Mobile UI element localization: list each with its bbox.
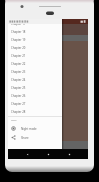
staticText: Share	[21, 136, 29, 140]
button[interactable]: Chapter 23	[8, 68, 62, 76]
button[interactable]: Chapter 21	[8, 52, 62, 60]
button[interactable]: Chapter 20	[8, 44, 62, 52]
button[interactable]: Recent apps	[64, 149, 75, 159]
staticText: Chapter 17	[11, 22, 26, 26]
staticText: Chapter 26	[11, 94, 26, 98]
staticText: Chapter 21	[11, 54, 26, 58]
staticText: Chapter 27	[11, 102, 26, 106]
button[interactable]: Back	[22, 149, 33, 159]
staticText: Chapter 20	[11, 46, 26, 50]
button[interactable]: Chapter 17	[8, 20, 62, 28]
staticText: Night mode	[21, 127, 37, 131]
button[interactable]: Chapter 25	[8, 84, 62, 92]
staticText: Chapter 25	[11, 86, 26, 90]
button[interactable]: Share	[8, 133, 62, 142]
button[interactable]: Night mode	[8, 124, 62, 133]
button[interactable]: Chapter 19	[8, 36, 62, 44]
button[interactable]: Chapter 22	[8, 60, 62, 68]
staticText: Chapter 23	[11, 70, 26, 74]
staticText: Chapter 28	[11, 110, 26, 114]
staticText: Chapter 19	[11, 38, 26, 42]
button[interactable]: Chapter 26	[8, 92, 62, 100]
button[interactable]: Chapter 27	[8, 100, 62, 108]
staticText: More	[11, 119, 17, 122]
button[interactable]: Chapter 24	[8, 76, 62, 84]
staticText: Chapter 18	[11, 30, 26, 34]
button[interactable]: Home	[43, 149, 54, 159]
staticText: Chapter 24	[11, 78, 26, 82]
button[interactable]: Chapter 28	[8, 108, 62, 116]
button[interactable]: Chapter 18	[8, 28, 62, 36]
staticText: Chapter 22	[11, 62, 26, 66]
